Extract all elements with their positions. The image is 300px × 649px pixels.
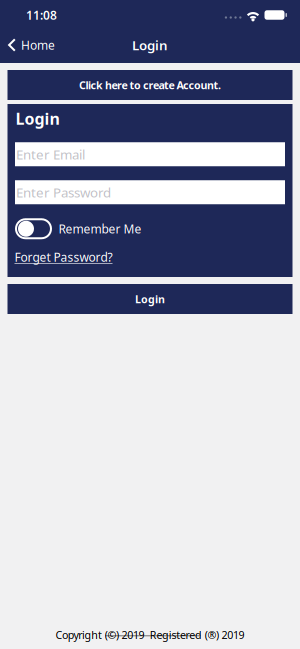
- button[interactable]: Click here to create Account.: [7, 70, 292, 100]
- staticText: 11:08: [26, 7, 57, 23]
- staticText: Copyright: [55, 628, 105, 642]
- button[interactable]: Forget Password?: [7, 249, 112, 265]
- staticText: Login: [132, 36, 168, 54]
- staticText: Home: [21, 37, 55, 53]
- staticText: Click here to create Account.: [79, 78, 221, 92]
- staticText: Forget Password?: [14, 249, 112, 265]
- staticText: Login: [135, 292, 165, 306]
- staticText: Remember Me: [58, 221, 141, 237]
- staticText: Login: [15, 108, 59, 129]
- staticText: (®) 2019: [202, 628, 245, 642]
- button[interactable]: Home: [0, 37, 55, 53]
- button[interactable]: Login: [7, 284, 292, 314]
- button[interactable]: Remember Me: [15, 218, 52, 239]
- staticText: Enter Password: [16, 183, 111, 201]
- staticText: Enter Email: [16, 145, 85, 163]
- staticText: (©) 2019 Registered: [105, 628, 202, 642]
